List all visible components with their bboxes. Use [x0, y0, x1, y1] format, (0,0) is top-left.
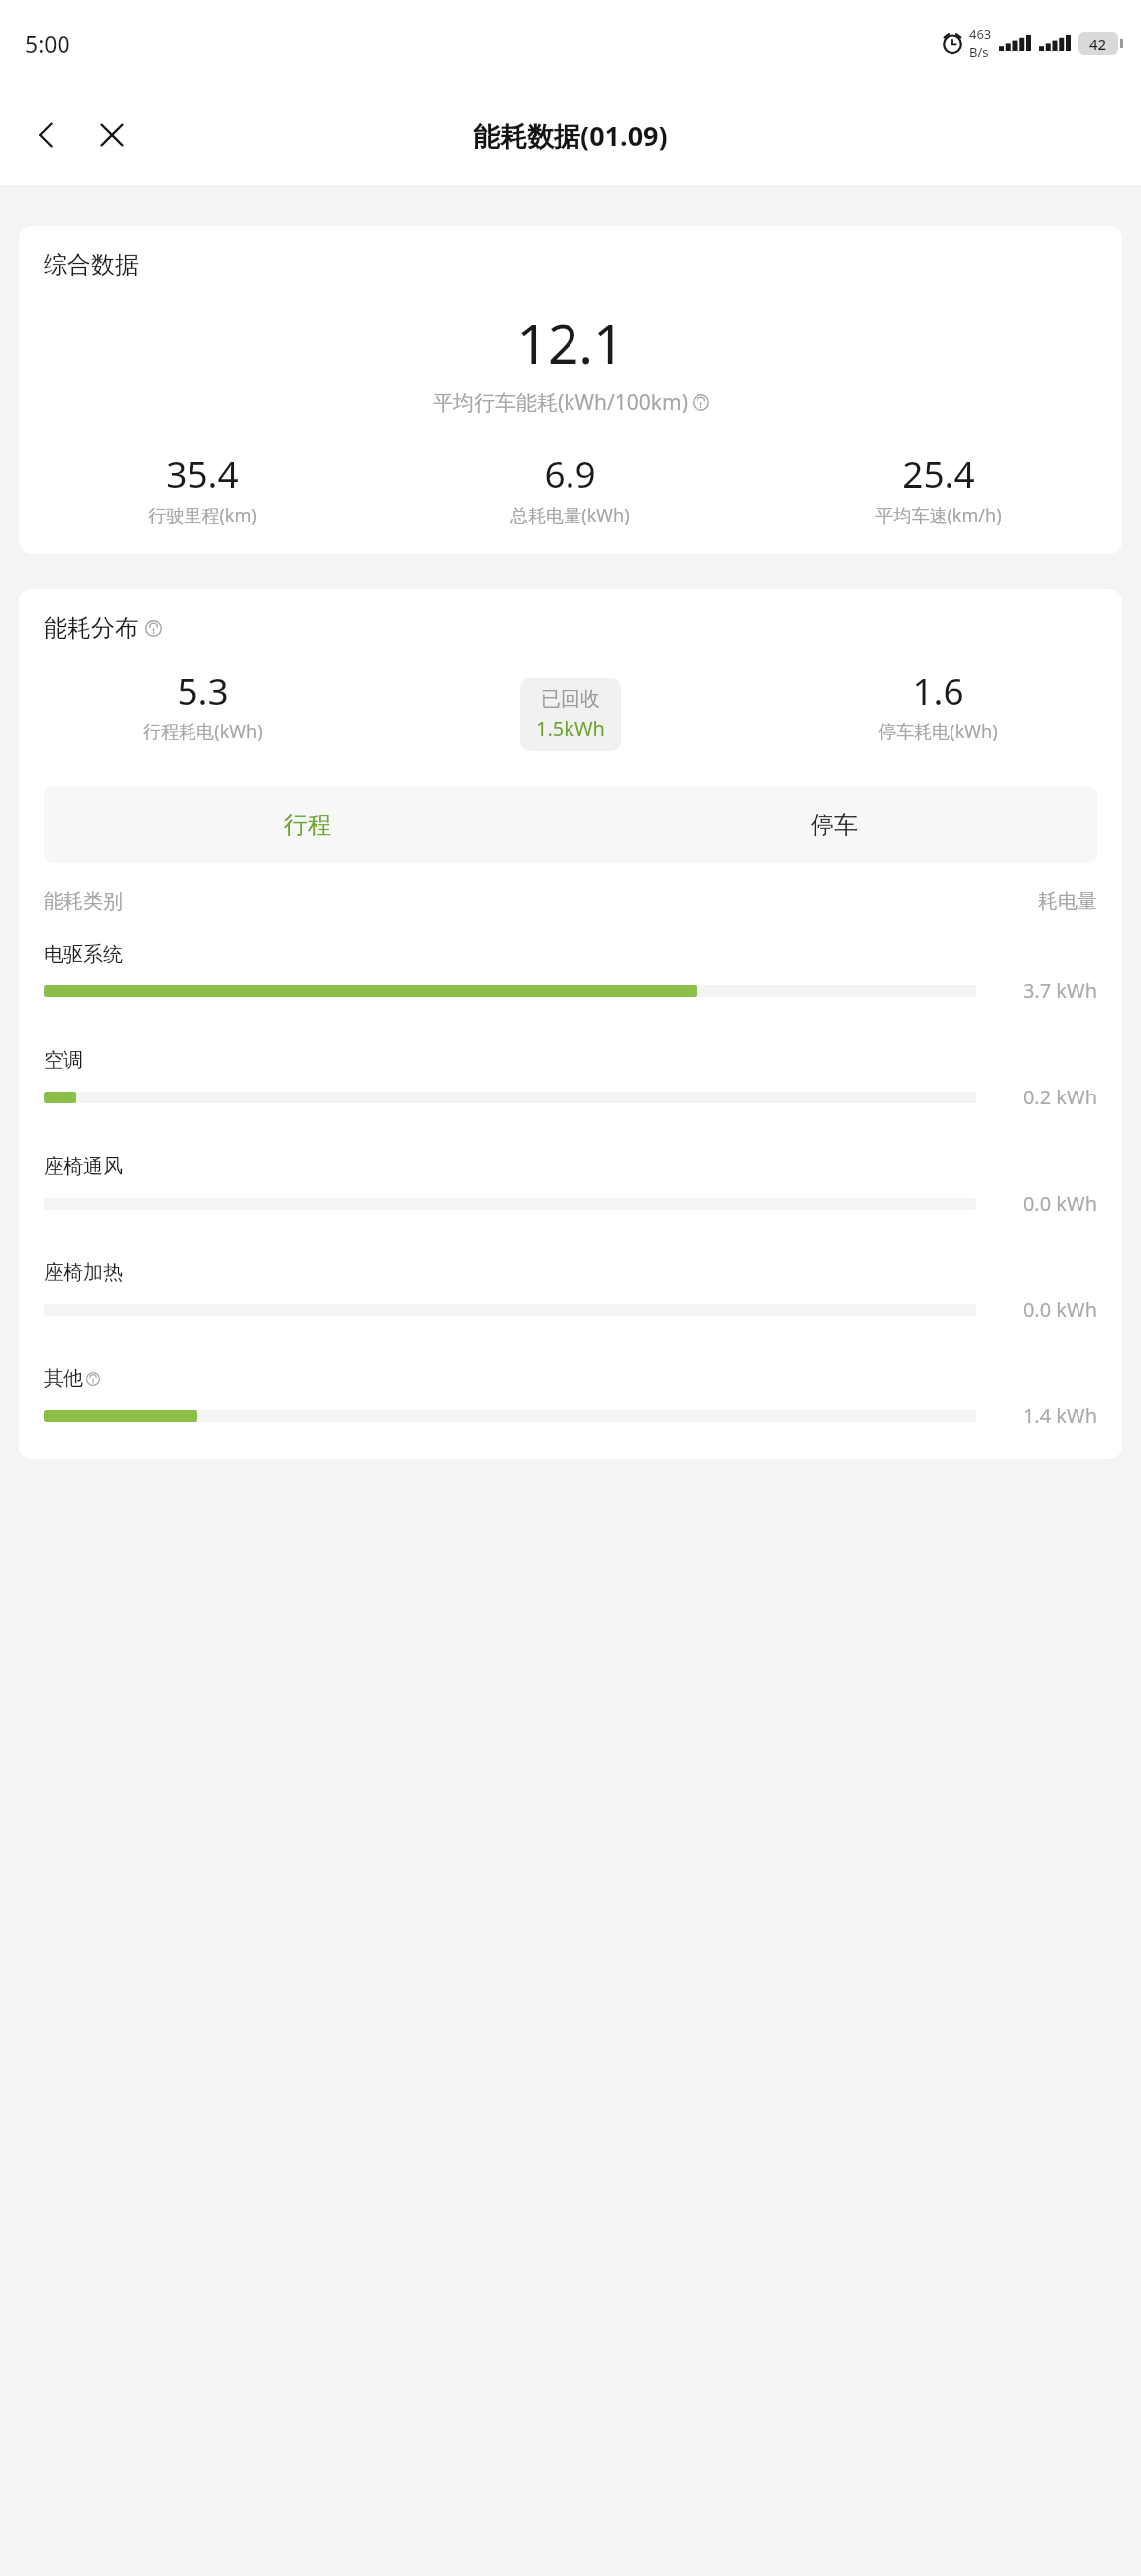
staticText: 耗电量	[1038, 889, 1097, 914]
staticText: 已回收	[541, 687, 600, 711]
staticText: 综合数据	[44, 250, 139, 280]
button[interactable]: 行程	[44, 786, 570, 863]
staticText: 行程耗电(kWh)	[143, 719, 263, 744]
staticText: 行驶里程(km)	[148, 503, 257, 528]
staticText: 3.7 kWh	[1022, 977, 1097, 1004]
staticText: 25.4	[902, 449, 975, 498]
staticText: 42	[1089, 34, 1107, 54]
staticText: 12.1	[19, 306, 1122, 380]
staticText: 其他	[44, 1366, 83, 1391]
staticText: 0.2 kWh	[1022, 1084, 1097, 1110]
button[interactable]: Back	[18, 106, 75, 164]
staticText: 5.3	[177, 665, 229, 714]
staticText: 1.4 kWh	[1022, 1402, 1097, 1429]
staticText: 0.0 kWh	[1022, 1296, 1097, 1323]
staticText: 平均行车能耗(kWh/100km)	[433, 388, 689, 417]
staticText: 463	[969, 25, 992, 43]
staticText: 1.6	[912, 665, 964, 714]
staticText: 6.9	[544, 449, 596, 498]
staticText: 1.5kWh	[536, 715, 605, 742]
staticText: 能耗数据(01.09)	[473, 117, 668, 154]
button[interactable]: 停车	[570, 786, 1097, 863]
staticText: 总耗电量(kWh)	[510, 503, 630, 528]
button[interactable]: Close	[83, 106, 141, 164]
staticText: 平均车速(km/h)	[875, 503, 1002, 528]
staticText: B/s	[969, 43, 989, 61]
staticText: 35.4	[166, 449, 239, 498]
staticText: 座椅加热	[44, 1260, 123, 1285]
staticText: 停车	[811, 810, 858, 839]
staticText: 能耗类别	[44, 889, 123, 914]
staticText: 能耗分布	[44, 613, 139, 643]
staticText: 空调	[44, 1048, 83, 1073]
staticText: 0.0 kWh	[1022, 1190, 1097, 1217]
staticText: 座椅通风	[44, 1154, 123, 1179]
staticText: 电驱系统	[44, 942, 123, 966]
staticText: 停车耗电(kWh)	[878, 719, 998, 744]
staticText: 5:00	[25, 28, 70, 59]
staticText: 行程	[284, 810, 331, 839]
